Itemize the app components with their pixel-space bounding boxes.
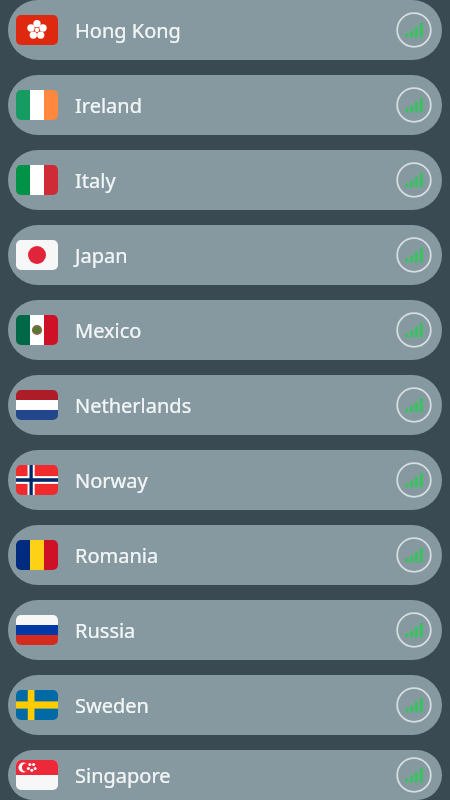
button[interactable]: Ireland — [8, 75, 442, 135]
button[interactable]: Signal strength for Mexico — [390, 306, 438, 354]
staticText: Netherlands — [75, 392, 390, 419]
button[interactable]: Signal strength for Romania — [390, 531, 438, 579]
button[interactable]: Japan — [8, 225, 442, 285]
button[interactable]: Norway — [8, 450, 442, 510]
staticText: Singapore — [75, 762, 390, 789]
staticText: Ireland — [75, 92, 390, 119]
button[interactable]: Signal strength for Italy — [390, 156, 438, 204]
staticText: Hong Kong — [75, 17, 390, 44]
button[interactable]: Netherlands — [8, 375, 442, 435]
staticText: Japan — [75, 242, 390, 269]
button[interactable]: Signal strength for Japan — [390, 231, 438, 279]
button[interactable]: Mexico — [8, 300, 442, 360]
button[interactable]: Italy — [8, 150, 442, 210]
staticText: Sweden — [75, 692, 390, 719]
staticText: Italy — [75, 167, 390, 194]
button[interactable]: Russia — [8, 600, 442, 660]
button[interactable]: Signal strength for Russia — [390, 606, 438, 654]
staticText: Mexico — [75, 317, 390, 344]
button[interactable]: Singapore — [8, 750, 442, 800]
button[interactable]: Signal strength for Ireland — [390, 81, 438, 129]
button[interactable]: Signal strength for Norway — [390, 456, 438, 504]
button[interactable]: Signal strength for Sweden — [390, 681, 438, 729]
button[interactable]: Signal strength for Singapore — [390, 751, 438, 799]
button[interactable]: Signal strength for Netherlands — [390, 381, 438, 429]
staticText: Russia — [75, 617, 390, 644]
staticText: Romania — [75, 542, 390, 569]
button[interactable]: Sweden — [8, 675, 442, 735]
button[interactable]: Signal strength for Hong Kong — [390, 6, 438, 54]
button[interactable]: Hong Kong — [8, 0, 442, 60]
staticText: Norway — [75, 467, 390, 494]
button[interactable]: Romania — [8, 525, 442, 585]
